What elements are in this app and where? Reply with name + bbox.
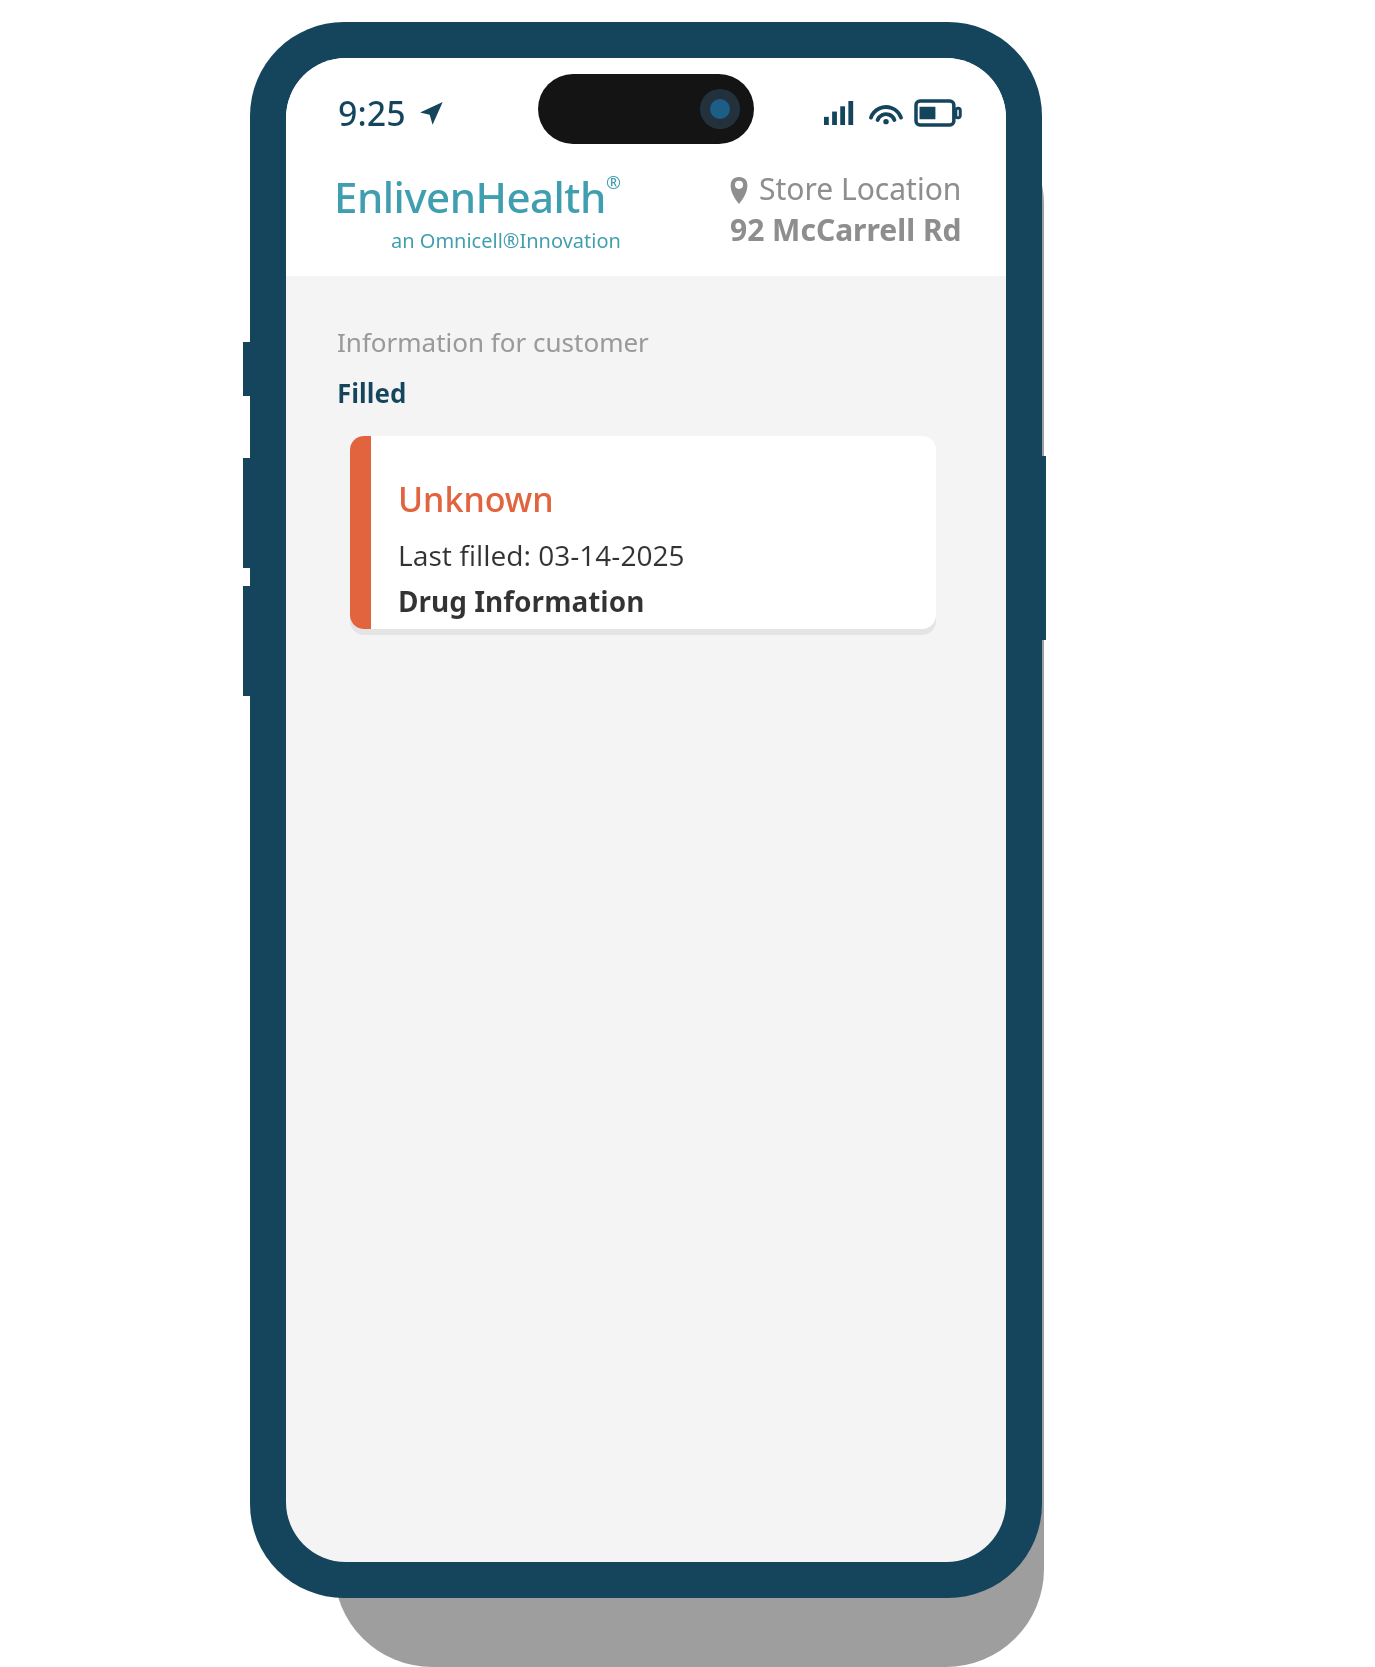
staticText: Information for customer <box>337 324 649 359</box>
staticText: 92 McCarrell Rd <box>730 209 962 250</box>
staticText: Unknown <box>398 476 554 522</box>
staticText: Last filled: 03-14-2025 <box>398 536 685 574</box>
staticText: Store Location <box>759 168 962 209</box>
staticText: ® <box>606 170 621 195</box>
button[interactable]: Unknown <box>350 436 936 629</box>
staticText: EnlivenHealth <box>334 168 606 225</box>
staticText: Filled <box>337 375 407 410</box>
staticText: Drug Information <box>398 582 645 620</box>
button[interactable]: Store location <box>727 168 962 250</box>
staticText: an Omnicell®Innovation <box>391 227 621 254</box>
staticText: 9:25 <box>338 90 406 136</box>
